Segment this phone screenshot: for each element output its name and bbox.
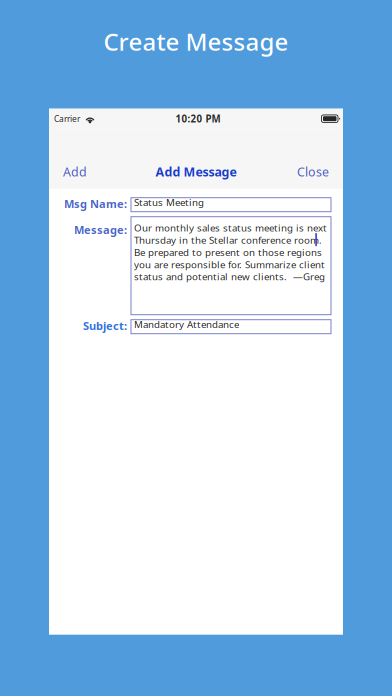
staticText: Carrier [54,113,80,124]
staticText: Message: [74,222,127,237]
button[interactable]: Close [292,157,334,186]
staticText: Add [63,163,87,180]
staticText: Status Meeting [134,196,204,209]
staticText: Msg Name: [64,196,127,211]
staticText: Create Message [103,25,288,58]
staticText: Mandatory Attendance [134,318,239,331]
button[interactable]: Status Meeting [131,198,331,212]
staticText: Close [297,163,329,180]
staticText: Add Message [155,163,236,180]
staticText: 10:20 PM [175,112,220,125]
button[interactable]: Our monthly sales status meeting is next… [131,217,331,315]
staticText: Subject: [83,318,127,333]
button[interactable]: Add [58,157,92,186]
button[interactable]: Mandatory Attendance [131,320,331,334]
staticText: Our monthly sales status meeting is next… [134,222,327,283]
